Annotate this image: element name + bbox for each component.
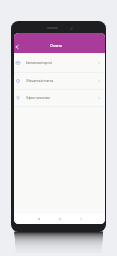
staticText: Банковской картой — [26, 61, 52, 65]
button[interactable]: Обещанный платеж — [14, 73, 105, 89]
button[interactable]: Банковской картой — [14, 53, 105, 72]
button[interactable]: Back — [78, 216, 84, 222]
button[interactable]: Home — [57, 216, 63, 222]
button[interactable]: Back — [14, 39, 21, 54]
staticText: Офисы компании — [26, 96, 50, 100]
button[interactable]: Recents — [36, 216, 42, 222]
button[interactable]: Офисы компании — [14, 90, 105, 106]
staticText: Оплата — [50, 44, 62, 48]
staticText: Обещанный платеж — [26, 79, 54, 83]
